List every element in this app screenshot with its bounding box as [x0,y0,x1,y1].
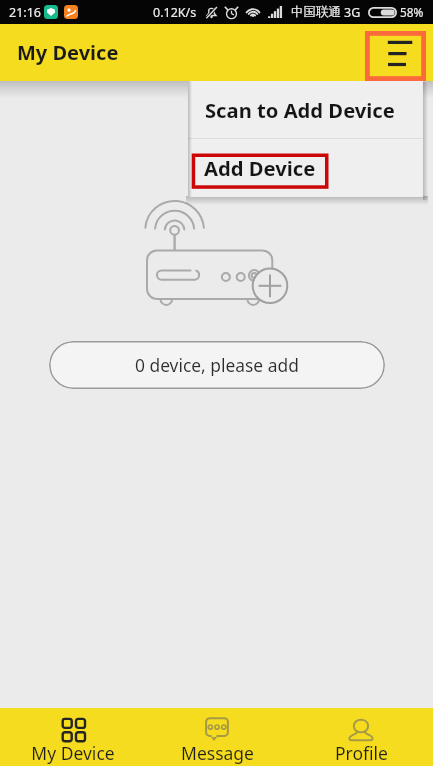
button[interactable]: Message [145,708,289,766]
staticText: 中国联通 [291,4,341,20]
staticText: 0 device, please add [135,353,299,377]
staticText: 0.12K/s [153,4,197,21]
button[interactable]: Profile [289,708,433,766]
staticText: 21:16 [9,4,41,21]
staticText: Scan to Add Device [205,96,395,124]
button[interactable]: Menu [365,31,426,81]
button[interactable]: Scan to Add Device [188,81,423,138]
staticText: 58% [400,4,424,20]
button[interactable]: Add Device [188,139,423,197]
staticText: Add Device [204,154,316,182]
staticText: 3G [344,4,361,21]
button[interactable]: My Device [0,708,145,766]
staticText: Profile [335,741,388,765]
staticText: Message [181,741,254,765]
button[interactable]: 0 device, please add [49,341,385,389]
staticText: My Device [17,39,119,66]
staticText: My Device [31,741,115,765]
